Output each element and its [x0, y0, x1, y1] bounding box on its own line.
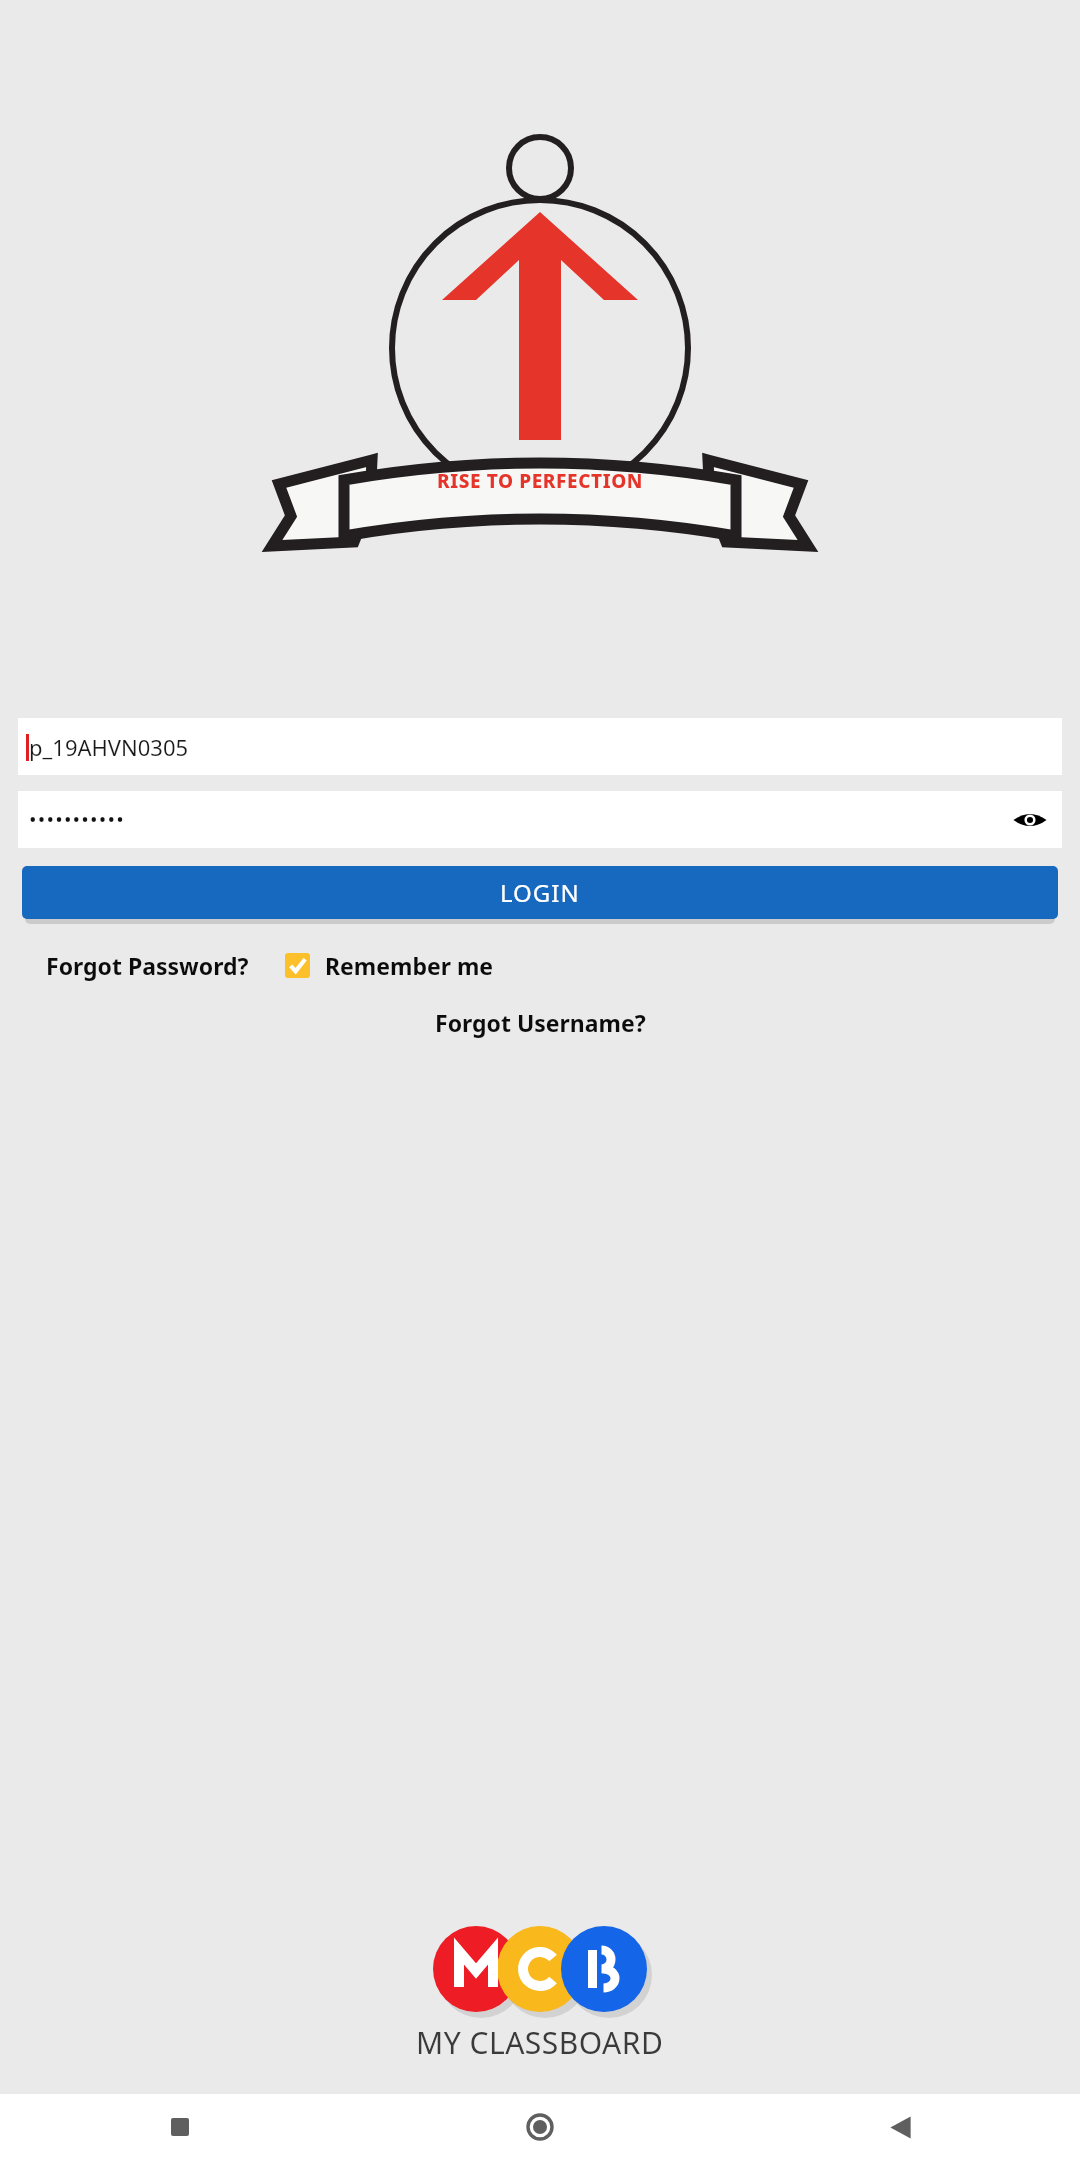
staticText: ••••••••••• [29, 806, 125, 833]
button[interactable]: Show password [1008, 798, 1052, 842]
staticText: Forgot Password? [46, 950, 249, 981]
button[interactable]: Home [360, 2094, 720, 2160]
staticText: MY CLASSBOARD [416, 2022, 664, 2063]
staticText: RISE TO PERFECTION [437, 468, 644, 494]
button[interactable]: LOGIN [22, 866, 1058, 919]
button[interactable]: p_19AHVN0305 [18, 718, 1062, 775]
button[interactable]: Forgot Username? [423, 1001, 658, 1044]
staticText: p_19AHVN0305 [29, 732, 189, 762]
staticText: Forgot Username? [435, 1007, 646, 1038]
button[interactable]: ••••••••••• [18, 791, 1062, 848]
staticText: Remember me [325, 950, 494, 981]
staticText: LOGIN [500, 876, 580, 909]
button[interactable]: Recent apps [0, 2094, 360, 2160]
button[interactable]: Remember me [285, 950, 494, 981]
button[interactable]: Forgot Password? [46, 944, 249, 987]
button[interactable]: Back [720, 2094, 1080, 2160]
